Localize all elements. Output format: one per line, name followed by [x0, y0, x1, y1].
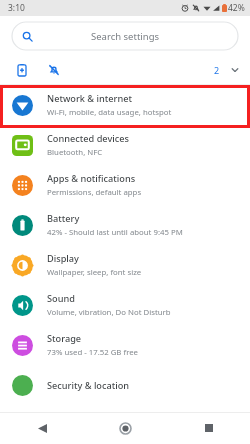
button[interactable]: Connected devices [0, 125, 250, 165]
staticText: Volume, vibration, Do Not Disturb [47, 307, 171, 318]
staticText: Connected devices [47, 132, 129, 145]
button[interactable]: Battery [0, 205, 250, 245]
staticText: 3:10 [8, 2, 25, 14]
staticText: 2 [214, 64, 220, 76]
staticText: Storage [47, 332, 82, 345]
button[interactable]: Search settings [12, 22, 238, 50]
staticText: Battery [47, 212, 80, 225]
staticText: Bluetooth, NFC [47, 147, 103, 158]
button[interactable]: Storage [0, 325, 250, 365]
staticText: Sound [47, 292, 75, 305]
staticText: Search settings [91, 30, 160, 43]
staticText: Wallpaper, sleep, font size [47, 267, 142, 278]
button[interactable]: Network & internet [0, 85, 250, 125]
button[interactable]: Recent apps [167, 412, 250, 444]
button[interactable]: Home [84, 412, 167, 444]
button[interactable]: Battery saver suggestion [12, 60, 32, 80]
button[interactable]: Back [0, 412, 84, 444]
staticText: Wi-Fi, mobile, data usage, hotspot [47, 107, 172, 118]
staticText: Network & internet [47, 92, 132, 105]
button[interactable]: Display [0, 245, 250, 285]
button[interactable]: Notifications suggestion [44, 60, 64, 80]
staticText: 42% - Should last until about 9:45 PM [47, 227, 183, 238]
staticText: Security & location [47, 379, 130, 392]
button[interactable]: Apps & notifications [0, 165, 250, 205]
staticText: Apps & notifications [47, 172, 136, 185]
button[interactable]: Sound [0, 285, 250, 325]
staticText: 73% used - 17.52 GB free [47, 347, 139, 358]
button[interactable]: Security & location [0, 365, 250, 405]
button[interactable]: Expand suggestions [214, 64, 240, 76]
staticText: Display [47, 252, 79, 265]
staticText: 42% [228, 2, 245, 14]
staticText: Permissions, default apps [47, 187, 142, 198]
